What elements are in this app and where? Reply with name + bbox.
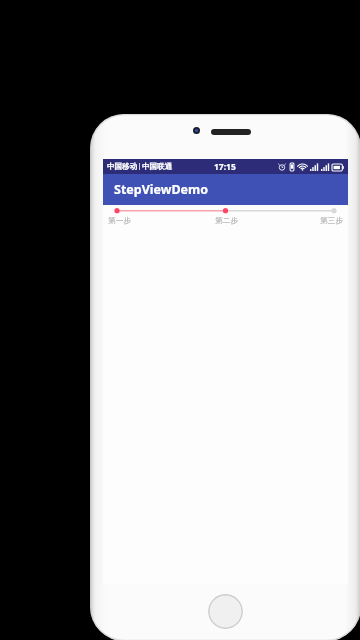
button[interactable]: 第一步 [105, 216, 186, 225]
button[interactable]: Home [208, 594, 243, 629]
staticText: 17:15 [214, 161, 236, 173]
staticText: 中国移动 [107, 162, 137, 171]
staticText: StepViewDemo [114, 181, 209, 198]
staticText: 第三步 [320, 216, 343, 225]
button[interactable]: 第三步 [266, 216, 346, 225]
staticText: 第一步 [108, 216, 131, 225]
button[interactable]: 第二步 [186, 216, 266, 225]
staticText: 中国联通 [142, 162, 172, 171]
staticText: 第二步 [215, 216, 238, 225]
